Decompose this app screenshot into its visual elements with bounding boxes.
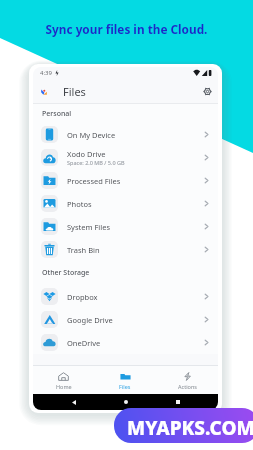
button[interactable]: Dropbox bbox=[33, 285, 218, 308]
button[interactable]: Home bbox=[120, 396, 132, 408]
staticText: System Files bbox=[67, 222, 111, 232]
staticText: Space: 2.0 MB / 5.0 GB bbox=[67, 159, 125, 166]
button[interactable]: On My Device bbox=[33, 123, 218, 146]
staticText: Other Storage bbox=[42, 268, 90, 278]
button[interactable]: Google Drive bbox=[33, 308, 218, 331]
staticText: Google Drive bbox=[67, 315, 113, 325]
button[interactable]: Trash Bin bbox=[33, 238, 218, 261]
button[interactable]: OneDrive bbox=[33, 331, 218, 354]
staticText: OneDrive bbox=[67, 338, 101, 348]
staticText: Processed Files bbox=[67, 176, 121, 186]
staticText: Trash Bin bbox=[67, 245, 100, 255]
button[interactable]: Xodo Drive bbox=[33, 146, 218, 169]
button[interactable]: Photos bbox=[33, 192, 218, 215]
button[interactable]: Recents bbox=[172, 396, 184, 408]
staticText: Files bbox=[63, 84, 86, 99]
button[interactable]: Files bbox=[94, 370, 156, 390]
staticText: MYAPKS.COM bbox=[127, 415, 253, 441]
button[interactable]: Xodo logo bbox=[38, 86, 49, 97]
button[interactable]: Back bbox=[68, 396, 80, 408]
staticText: Actions bbox=[178, 383, 197, 390]
staticText: 4:39 bbox=[40, 69, 52, 77]
button[interactable]: Processed Files bbox=[33, 169, 218, 192]
staticText: Sync your files in the Cloud. bbox=[0, 21, 253, 37]
staticText: Xodo Drive bbox=[67, 149, 106, 159]
staticText: Photos bbox=[67, 199, 92, 209]
staticText: Dropbox bbox=[67, 292, 98, 302]
staticText: Personal bbox=[42, 109, 72, 119]
staticText: Files bbox=[119, 383, 131, 390]
button[interactable]: Home bbox=[33, 370, 94, 390]
staticText: On My Device bbox=[67, 130, 116, 140]
button[interactable]: Settings bbox=[199, 83, 216, 100]
staticText: Home bbox=[56, 383, 72, 390]
button[interactable]: Actions bbox=[156, 370, 218, 390]
button[interactable]: System Files bbox=[33, 215, 218, 238]
